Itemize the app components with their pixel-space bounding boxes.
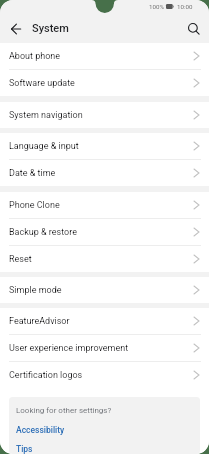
button[interactable]: Language & input: [0, 133, 209, 159]
button[interactable]: FeatureAdvisor: [0, 308, 209, 334]
button[interactable]: Phone Clone: [0, 192, 209, 218]
button[interactable]: Tips: [16, 444, 33, 454]
staticText: Phone Clone: [9, 200, 60, 211]
staticText: Simple mode: [9, 285, 62, 296]
button[interactable]: Back: [4, 17, 28, 41]
staticText: FeatureAdvisor: [9, 316, 70, 327]
button[interactable]: Accessibility: [16, 425, 65, 435]
staticText: 10:00: [177, 3, 193, 10]
staticText: Looking for other settings?: [16, 406, 112, 415]
staticText: Certification logos: [9, 370, 83, 381]
button[interactable]: Software update: [0, 70, 209, 96]
button[interactable]: Simple mode: [0, 277, 209, 303]
button[interactable]: Certification logos: [0, 362, 209, 388]
staticText: System: [32, 22, 69, 35]
button[interactable]: Date & time: [0, 160, 209, 186]
staticText: 100%: [149, 3, 164, 10]
button[interactable]: User experience improvement: [0, 335, 209, 361]
button[interactable]: Reset: [0, 246, 209, 272]
staticText: User experience improvement: [9, 343, 129, 354]
staticText: Backup & restore: [9, 227, 77, 238]
button[interactable]: About phone: [0, 43, 209, 69]
staticText: About phone: [9, 51, 61, 62]
staticText: Date & time: [9, 168, 56, 179]
staticText: Software update: [9, 78, 75, 89]
staticText: Reset: [9, 254, 32, 265]
button[interactable]: Backup & restore: [0, 219, 209, 245]
button[interactable]: System navigation: [0, 102, 209, 128]
staticText: System navigation: [9, 110, 83, 121]
staticText: Language & input: [9, 141, 79, 152]
button[interactable]: Search: [182, 17, 206, 41]
